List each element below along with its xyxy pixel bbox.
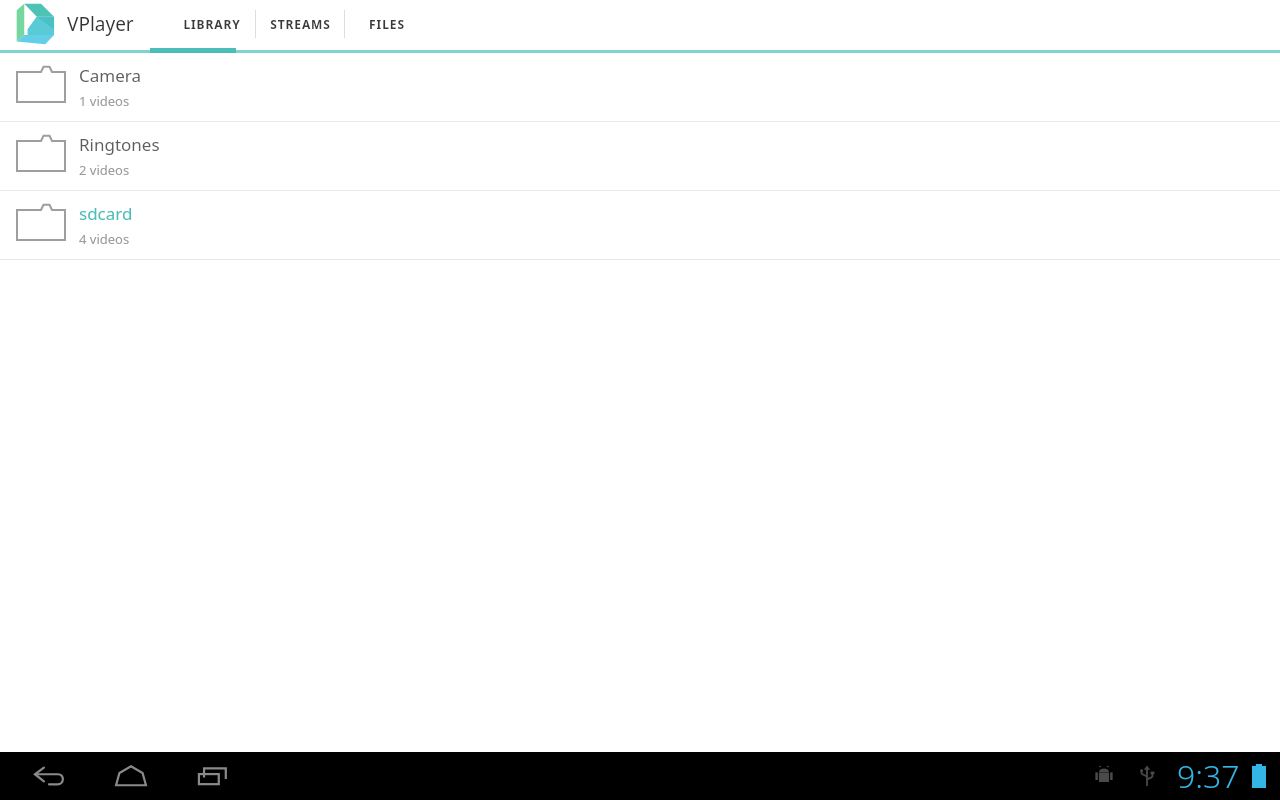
button[interactable]: Recent apps (182, 752, 244, 800)
staticText: Ringtones (79, 133, 160, 156)
staticText: LIBRARY (183, 16, 241, 32)
staticText: sdcard (79, 202, 133, 225)
button[interactable]: Home (100, 752, 162, 800)
staticText: Camera (79, 64, 141, 87)
staticText: 9:37 (1177, 754, 1240, 798)
button[interactable]: Camera (0, 53, 1280, 121)
button[interactable]: FILES (345, 0, 429, 48)
staticText: STREAMS (270, 16, 331, 32)
staticText: VPlayer (67, 11, 134, 37)
button[interactable]: Back (18, 752, 80, 800)
button[interactable]: Ringtones (0, 122, 1280, 190)
staticText: 2 videos (79, 161, 130, 179)
staticText: 1 videos (79, 92, 130, 110)
staticText: 4 videos (79, 230, 130, 248)
button[interactable]: sdcard (0, 191, 1280, 259)
staticText: FILES (369, 16, 405, 32)
button[interactable]: LIBRARY (169, 0, 255, 48)
button[interactable]: STREAMS (256, 0, 344, 48)
